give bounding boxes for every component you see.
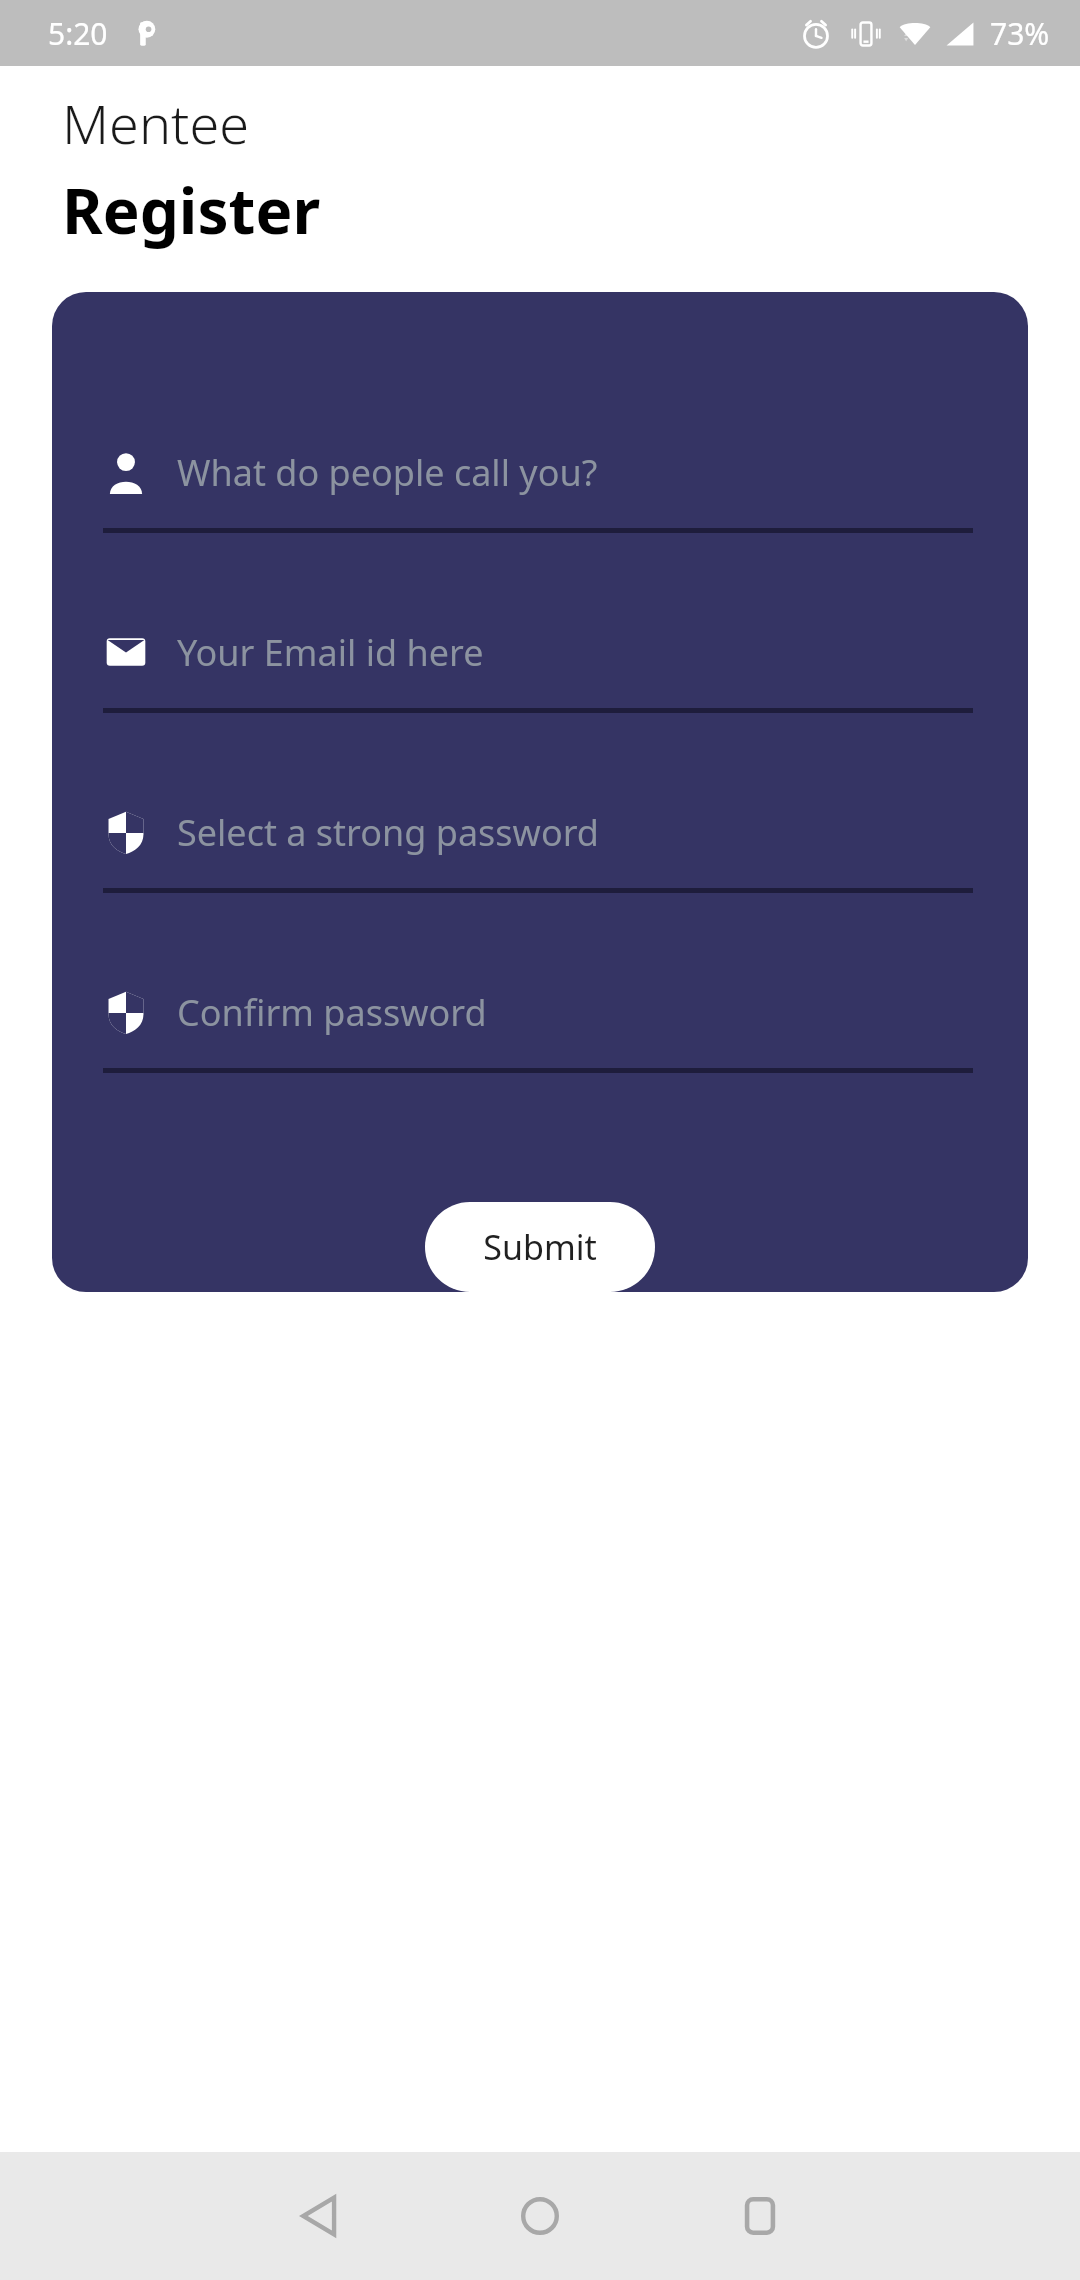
button[interactable]: Select a strong password <box>52 776 1028 956</box>
staticText: 5:20 <box>48 13 108 54</box>
staticText: Your Email id here <box>177 628 484 677</box>
button[interactable]: What do people call you? <box>52 416 1028 596</box>
button[interactable]: Your Email id here <box>52 596 1028 776</box>
button[interactable]: Back <box>260 2156 380 2276</box>
button[interactable]: Submit <box>425 1202 655 1292</box>
staticText: 73% <box>990 13 1050 54</box>
button[interactable]: Confirm password <box>52 956 1028 1136</box>
staticText: Confirm password <box>177 988 487 1037</box>
staticText: Mentee <box>62 86 250 160</box>
staticText: Register <box>62 168 321 252</box>
button[interactable]: Home <box>480 2156 600 2276</box>
staticText: What do people call you? <box>177 448 598 497</box>
staticText: Select a strong password <box>177 808 599 857</box>
button[interactable]: Recent apps <box>700 2156 820 2276</box>
staticText: Submit <box>483 1224 597 1270</box>
